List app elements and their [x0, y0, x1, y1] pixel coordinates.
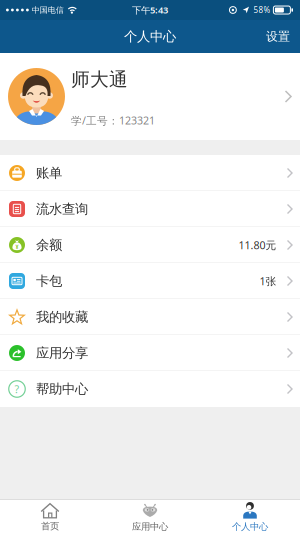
button[interactable]: ? [0, 371, 300, 407]
staticText: 学/工号：123321 [71, 113, 155, 128]
button[interactable]: 账单 [0, 155, 300, 191]
staticText: 下午5:43 [132, 4, 168, 16]
staticText: 个人中心 [232, 521, 268, 532]
staticText: 应用分享 [36, 345, 88, 361]
staticText: 卡包 [36, 273, 62, 289]
staticText: 个人中心 [124, 28, 176, 45]
staticText: 应用中心 [132, 521, 168, 532]
button[interactable]: 师大通 [0, 53, 300, 140]
button[interactable]: 设置 [266, 29, 300, 44]
button[interactable]: 首页 [0, 502, 100, 532]
button[interactable]: 应用分享 [0, 335, 300, 371]
button[interactable]: ¥ [0, 227, 300, 263]
staticText: 我的收藏 [36, 309, 88, 325]
staticText: 首页 [41, 520, 59, 532]
staticText: 账单 [36, 165, 62, 181]
staticText: 58% [253, 5, 270, 15]
staticText: 设置 [266, 29, 290, 44]
button[interactable]: 流水查询 [0, 191, 300, 227]
staticText: 中国电信 [32, 5, 64, 15]
staticText: 1张 [259, 274, 276, 288]
button[interactable]: 应用中心 [100, 502, 200, 532]
staticText: 帮助中心 [36, 381, 88, 397]
button[interactable]: 卡包 [0, 263, 300, 299]
staticText: 流水查询 [36, 201, 88, 217]
staticText: ? [14, 382, 19, 396]
staticText: ¥ [15, 243, 18, 250]
staticText: 师大通 [71, 68, 128, 91]
staticText: 余额 [36, 237, 62, 253]
staticText: 11.80元 [238, 238, 276, 252]
button[interactable]: 个人中心 [200, 502, 300, 532]
button[interactable]: 我的收藏 [0, 299, 300, 335]
